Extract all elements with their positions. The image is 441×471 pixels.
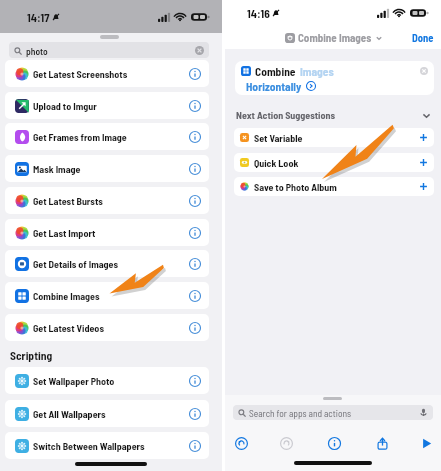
other: Remove action [420, 67, 428, 75]
staticText: Get All Wallpapers [33, 408, 106, 420]
button[interactable]: Combine Images [285, 26, 383, 49]
button[interactable]: Search for apps and actions [233, 405, 433, 420]
other: Voice search [419, 408, 428, 417]
other: Info [189, 163, 201, 175]
button[interactable]: Get Last Import [5, 219, 209, 246]
other: Info [189, 258, 201, 270]
button[interactable]: Get Latest Videos [5, 314, 209, 341]
staticText: Combine [255, 64, 296, 78]
other: Info [189, 68, 201, 80]
button[interactable]: Run [417, 434, 435, 452]
button[interactable]: Info [325, 434, 343, 452]
button[interactable]: Set Wallpaper Photo [5, 367, 209, 394]
button[interactable]: Share [373, 434, 391, 452]
button[interactable]: Get Frames from Image [5, 123, 209, 150]
button[interactable]: Combine [235, 61, 434, 95]
staticText: Get Latest Bursts [33, 195, 103, 207]
staticText: Mask Image [33, 163, 81, 175]
staticText: photo [26, 45, 48, 56]
other: Info [189, 440, 201, 452]
button[interactable]: Switch Between Wallpapers [5, 432, 209, 459]
staticText: Get Details of Images [33, 258, 119, 270]
staticText: Set Variable [254, 132, 303, 144]
staticText: Combine Images [298, 31, 372, 44]
staticText: Set Wallpaper Photo [33, 375, 115, 387]
button[interactable]: Upload to Imgur [5, 92, 209, 119]
other: Info [189, 227, 201, 239]
other: Info [189, 375, 201, 387]
button[interactable]: Done [412, 31, 434, 44]
other: Info [189, 408, 201, 420]
button[interactable]: Get Latest Bursts [5, 187, 209, 214]
button[interactable]: Quick Look [234, 153, 434, 172]
staticText: Switch Between Wallpapers [33, 440, 145, 452]
other: Info [189, 322, 201, 334]
staticText: Get Last Import [33, 227, 96, 239]
button[interactable]: Get Details of Images [5, 250, 209, 277]
button[interactable]: Set Variable [234, 128, 434, 147]
button[interactable]: Save to Photo Album [234, 177, 434, 196]
button[interactable]: Mask Image [5, 155, 209, 182]
other: Add action [419, 133, 428, 142]
staticText: Images [300, 64, 334, 78]
button[interactable]: Get Latest Screenshots [5, 60, 209, 87]
staticText: Get Frames from Image [33, 131, 127, 143]
staticText: Scripting [10, 348, 53, 362]
button[interactable]: Combine Images [5, 282, 209, 309]
other: Info [189, 195, 201, 207]
staticText: 14:17 [27, 10, 50, 24]
staticText: Next Action Suggestions [236, 109, 335, 121]
staticText: Upload to Imgur [33, 100, 97, 112]
button[interactable]: Collapse suggestions [421, 110, 432, 121]
staticText: 14:16 [247, 6, 270, 20]
button[interactable]: Get All Wallpapers [5, 400, 209, 427]
staticText: Save to Photo Album [254, 181, 337, 193]
staticText: Horizontally [246, 79, 302, 93]
staticText: Get Latest Videos [33, 322, 104, 334]
button[interactable]: Redo [277, 434, 295, 452]
other: Clear [195, 46, 204, 55]
button[interactable]: Undo [232, 434, 250, 452]
other: Add action [419, 158, 428, 167]
other: Info [189, 100, 201, 112]
other: Options [306, 81, 316, 91]
staticText: Get Latest Screenshots [33, 68, 128, 80]
staticText: Quick Look [254, 157, 299, 169]
other: Info [189, 131, 201, 143]
other: Add action [419, 182, 428, 191]
staticText: Search for apps and actions [249, 407, 352, 418]
other: Info [189, 290, 201, 302]
button[interactable]: photo [9, 42, 209, 58]
staticText: Combine Images [33, 290, 100, 302]
